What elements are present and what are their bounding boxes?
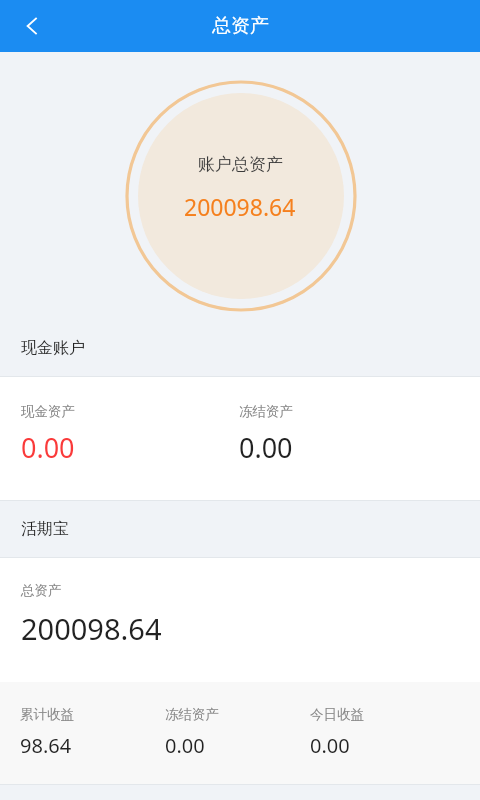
staticText: 冻结资产 [239, 403, 293, 420]
button[interactable]: 累计收益 [0, 682, 480, 784]
staticText: 0.00 [165, 732, 205, 759]
staticText: 现金资产 [21, 403, 75, 420]
staticText: 冻结资产 [165, 706, 219, 723]
staticText: 活期宝 [21, 519, 69, 539]
staticText: 账户总资产 [198, 154, 283, 175]
staticText: 200098.64 [184, 191, 296, 222]
staticText: 总资产 [21, 582, 62, 599]
staticText: 现金账户 [21, 338, 85, 358]
staticText: 总资产 [212, 14, 269, 38]
staticText: 98.64 [20, 732, 72, 759]
button[interactable]: 现金资产 [0, 377, 480, 500]
staticText: 今日收益 [310, 706, 364, 723]
button[interactable]: Back [10, 4, 54, 48]
staticText: 0.00 [21, 429, 75, 466]
button[interactable]: 总资产 [0, 558, 480, 682]
staticText: 0.00 [239, 429, 293, 466]
staticText: 0.00 [310, 732, 350, 759]
staticText: 200098.64 [21, 609, 162, 648]
staticText: 累计收益 [20, 706, 74, 723]
